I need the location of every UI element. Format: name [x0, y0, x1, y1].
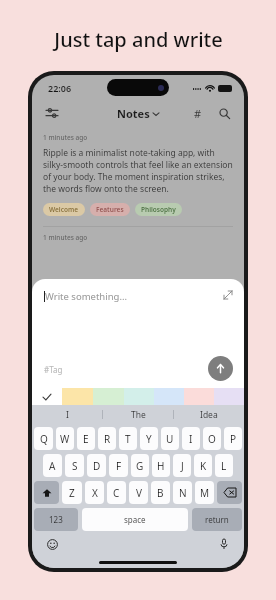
staticText: #Tag [44, 364, 63, 375]
staticText: Welcome [49, 205, 79, 214]
button[interactable]: Philosophy [135, 203, 182, 216]
button[interactable]: Y [140, 427, 158, 450]
staticText: C [113, 486, 120, 500]
button[interactable]: space [82, 508, 188, 531]
button[interactable]: Notes [117, 106, 159, 121]
button[interactable]: Tags [188, 103, 208, 123]
button[interactable]: 123 [34, 508, 78, 531]
staticText: Write something... [45, 290, 128, 303]
staticText: 22:06 [48, 82, 72, 94]
button[interactable]: Z [62, 481, 82, 504]
button[interactable]: Emoji [44, 536, 60, 552]
staticText: L [221, 459, 227, 473]
staticText: N [179, 486, 187, 500]
staticText: T [125, 432, 131, 446]
button[interactable]: Idea [174, 405, 244, 424]
staticText: Philosophy [141, 205, 176, 214]
button[interactable]: K [194, 454, 212, 477]
button[interactable]: I [32, 405, 102, 424]
staticText: Z [69, 486, 75, 500]
button[interactable]: C [107, 481, 126, 504]
staticText: Just tap and write [54, 26, 223, 53]
button[interactable]: D [87, 454, 106, 477]
staticText: F [116, 459, 122, 473]
button[interactable]: Shift [34, 481, 59, 504]
button[interactable]: U [161, 427, 179, 450]
staticText: I [189, 432, 193, 446]
button[interactable]: P [224, 427, 242, 450]
button[interactable]: H [152, 454, 170, 477]
staticText: space [124, 514, 146, 525]
staticText: D [93, 459, 101, 473]
staticText: 1 minutes ago [43, 233, 88, 242]
staticText: 123 [49, 514, 63, 525]
staticText: Q [40, 432, 48, 446]
button[interactable]: O [203, 427, 221, 450]
button[interactable]: S [65, 454, 84, 477]
button[interactable]: N [173, 481, 192, 504]
button[interactable]: return [192, 508, 242, 531]
staticText: M [200, 486, 210, 500]
staticText: I [66, 409, 69, 421]
staticText: K [200, 459, 207, 473]
button[interactable]: Welcome [43, 203, 85, 216]
staticText: Features [96, 205, 124, 214]
staticText: S [72, 459, 78, 473]
staticText: 1 minutes ago [43, 133, 88, 142]
button[interactable]: Confirm color [32, 388, 62, 405]
button[interactable]: E [77, 427, 95, 450]
button[interactable]: Expand [221, 288, 235, 302]
staticText: Idea [200, 409, 218, 421]
staticText: A [49, 459, 56, 473]
button[interactable]: Send [208, 356, 233, 381]
button[interactable]: Backspace [217, 481, 242, 504]
staticText: return [205, 514, 229, 525]
button[interactable]: B [151, 481, 170, 504]
staticText: W [60, 432, 70, 446]
staticText: V [136, 486, 142, 500]
button[interactable]: I [182, 427, 200, 450]
button[interactable]: V [129, 481, 148, 504]
staticText: J [181, 459, 184, 473]
staticText: O [208, 432, 216, 446]
staticText: # [194, 106, 202, 121]
staticText: H [157, 459, 165, 473]
staticText: E [83, 432, 89, 446]
staticText: P [230, 432, 237, 446]
button[interactable]: The [103, 405, 173, 424]
button[interactable]: Q [34, 427, 53, 450]
staticText: U [166, 432, 174, 446]
button[interactable]: Features [90, 203, 130, 216]
staticText: Y [146, 432, 152, 446]
staticText: R [104, 432, 111, 446]
staticText: Notes [117, 106, 150, 121]
staticText: X [92, 486, 98, 500]
staticText: The [131, 409, 146, 421]
button[interactable]: Dictate [216, 536, 232, 552]
button[interactable]: Filter [42, 103, 62, 123]
button[interactable]: T [119, 427, 137, 450]
button[interactable]: G [131, 454, 149, 477]
button[interactable]: J [173, 454, 191, 477]
button[interactable]: R [98, 427, 116, 450]
button[interactable]: Search [214, 103, 234, 123]
staticText: G [136, 459, 144, 473]
staticText: B [157, 486, 164, 500]
button[interactable]: M [195, 481, 214, 504]
button[interactable]: L [215, 454, 233, 477]
button[interactable]: F [109, 454, 128, 477]
button[interactable]: X [85, 481, 104, 504]
button[interactable]: A [43, 454, 62, 477]
button[interactable]: W [56, 427, 74, 450]
staticText: Ripple is a minimalist note-taking app, … [43, 147, 233, 195]
